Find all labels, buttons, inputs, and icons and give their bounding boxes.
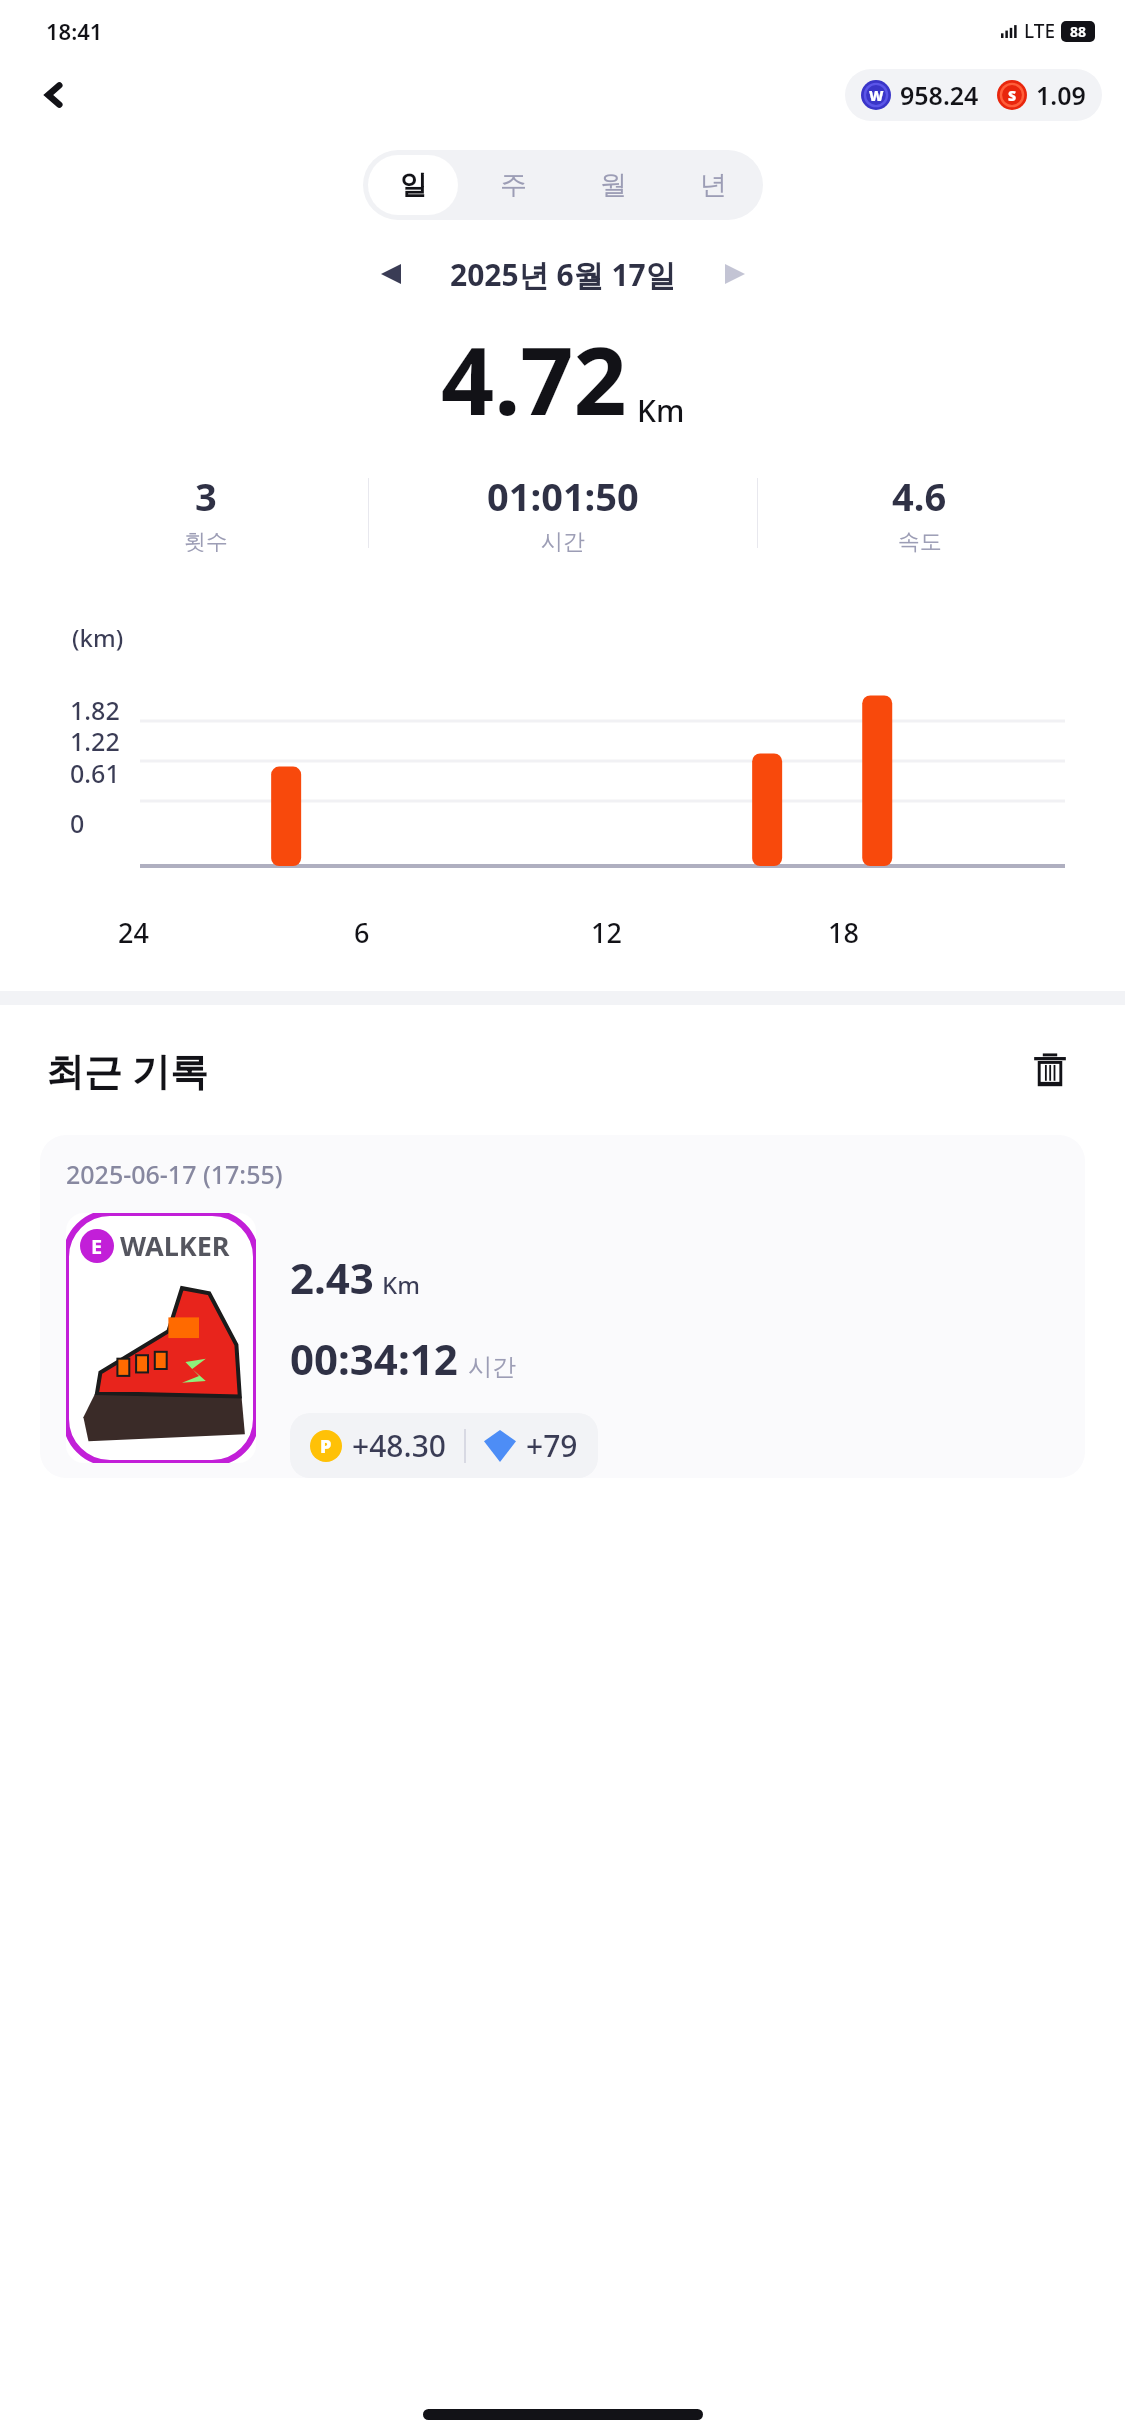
- staticText: 시간: [468, 1352, 516, 1382]
- staticText: 1.82: [70, 693, 120, 727]
- button[interactable]: 월: [568, 155, 658, 215]
- staticText: LTE: [1024, 18, 1056, 44]
- staticText: 일: [400, 168, 427, 202]
- button[interactable]: 일: [368, 155, 458, 215]
- staticText: WALKER: [120, 1227, 230, 1264]
- staticText: Km: [382, 1268, 420, 1301]
- button[interactable]: W: [845, 69, 1102, 121]
- staticText: E: [91, 1233, 103, 1260]
- staticText: 4.6: [892, 470, 947, 522]
- button[interactable]: Previous day: [364, 247, 418, 301]
- staticText: 2025-06-17 (17:55): [66, 1157, 283, 1191]
- staticText: 년: [700, 168, 727, 202]
- staticText: 18:41: [46, 16, 103, 46]
- staticText: 최근 기록: [46, 1044, 208, 1096]
- button[interactable]: Back: [28, 69, 80, 121]
- staticText: 3: [195, 470, 217, 522]
- staticText: 24: [118, 914, 149, 951]
- staticText: 1.09: [1036, 78, 1086, 112]
- staticText: (km): [72, 621, 124, 654]
- staticText: 01:01:50: [487, 470, 639, 522]
- staticText: 18: [828, 914, 859, 951]
- staticText: 958.24: [900, 78, 979, 112]
- staticText: 0: [70, 806, 85, 840]
- button[interactable]: 2025-06-17 (17:55): [40, 1135, 1085, 1478]
- staticText: 12: [591, 914, 622, 951]
- staticText: W: [869, 86, 884, 105]
- staticText: 월: [600, 168, 627, 202]
- staticText: S: [1008, 86, 1017, 105]
- staticText: 2025년 6월 17일: [450, 254, 676, 295]
- staticText: P: [320, 1434, 332, 1459]
- staticText: 88: [1070, 22, 1087, 41]
- staticText: 4.72: [441, 316, 627, 443]
- staticText: 횟수: [184, 528, 228, 556]
- staticText: 2.43: [290, 1249, 374, 1306]
- button[interactable]: Next day: [708, 247, 762, 301]
- staticText: 1.22: [70, 724, 120, 758]
- staticText: +79: [526, 1425, 578, 1466]
- staticText: 시간: [541, 528, 585, 556]
- staticText: 00:34:12: [290, 1330, 458, 1387]
- button[interactable]: Delete: [1021, 1041, 1079, 1099]
- staticText: +48.30: [352, 1425, 446, 1466]
- staticText: Km: [637, 390, 685, 431]
- staticText: 주: [500, 168, 527, 202]
- button[interactable]: 주: [468, 155, 558, 215]
- button[interactable]: 년: [668, 155, 758, 215]
- staticText: 속도: [898, 528, 942, 556]
- staticText: 0.61: [70, 756, 120, 790]
- staticText: 6: [354, 914, 370, 951]
